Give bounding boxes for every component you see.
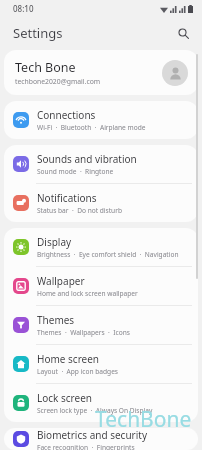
staticText: techbone2020@gmail.com — [15, 77, 101, 86]
staticText: Themes · Wallpapers · Icons — [37, 328, 130, 337]
button[interactable]: Wallpaper — [4, 267, 198, 305]
button[interactable]: Notifications — [4, 184, 198, 222]
button[interactable]: Home screen — [4, 345, 198, 383]
staticText: Sounds and vibration — [37, 152, 137, 166]
staticText: Connections — [37, 108, 96, 122]
staticText: Biometrics and security — [37, 428, 147, 442]
button[interactable]: Themes — [4, 306, 198, 344]
staticText: Display — [37, 235, 72, 249]
button[interactable]: Search — [172, 22, 194, 44]
staticText: Screen lock type · Always On Display — [37, 406, 153, 415]
staticText: Face recognition · Fingerprints — [37, 443, 135, 450]
staticText: Status bar · Do not disturb — [37, 206, 122, 215]
button[interactable]: Sounds and vibration — [4, 145, 198, 183]
staticText: 08:10 — [13, 3, 34, 14]
staticText: Settings — [13, 24, 63, 42]
staticText: Layout · App icon badges — [37, 367, 119, 376]
staticText: Sound mode · Ringtone — [37, 167, 114, 176]
button[interactable]: Lock screen — [4, 384, 198, 422]
staticText: Lock screen — [37, 391, 93, 405]
staticText: Wallpaper — [37, 274, 85, 288]
staticText: TechBone — [95, 405, 192, 434]
staticText: Home and lock screen wallpaper — [37, 289, 138, 298]
staticText: Notifications — [37, 191, 97, 205]
staticText: Brightness · Eye comfort shield · Naviga… — [37, 250, 190, 259]
staticText: Tech Bone — [15, 59, 76, 76]
staticText: Themes — [37, 313, 75, 327]
button[interactable]: Display — [4, 228, 198, 266]
button[interactable]: Biometrics and security — [4, 428, 198, 450]
staticText: Wi-Fi · Bluetooth · Airplane mode — [37, 123, 146, 132]
button[interactable]: Tech Bone — [4, 50, 198, 95]
staticText: Home screen — [37, 352, 100, 366]
button[interactable]: Connections — [4, 101, 198, 139]
